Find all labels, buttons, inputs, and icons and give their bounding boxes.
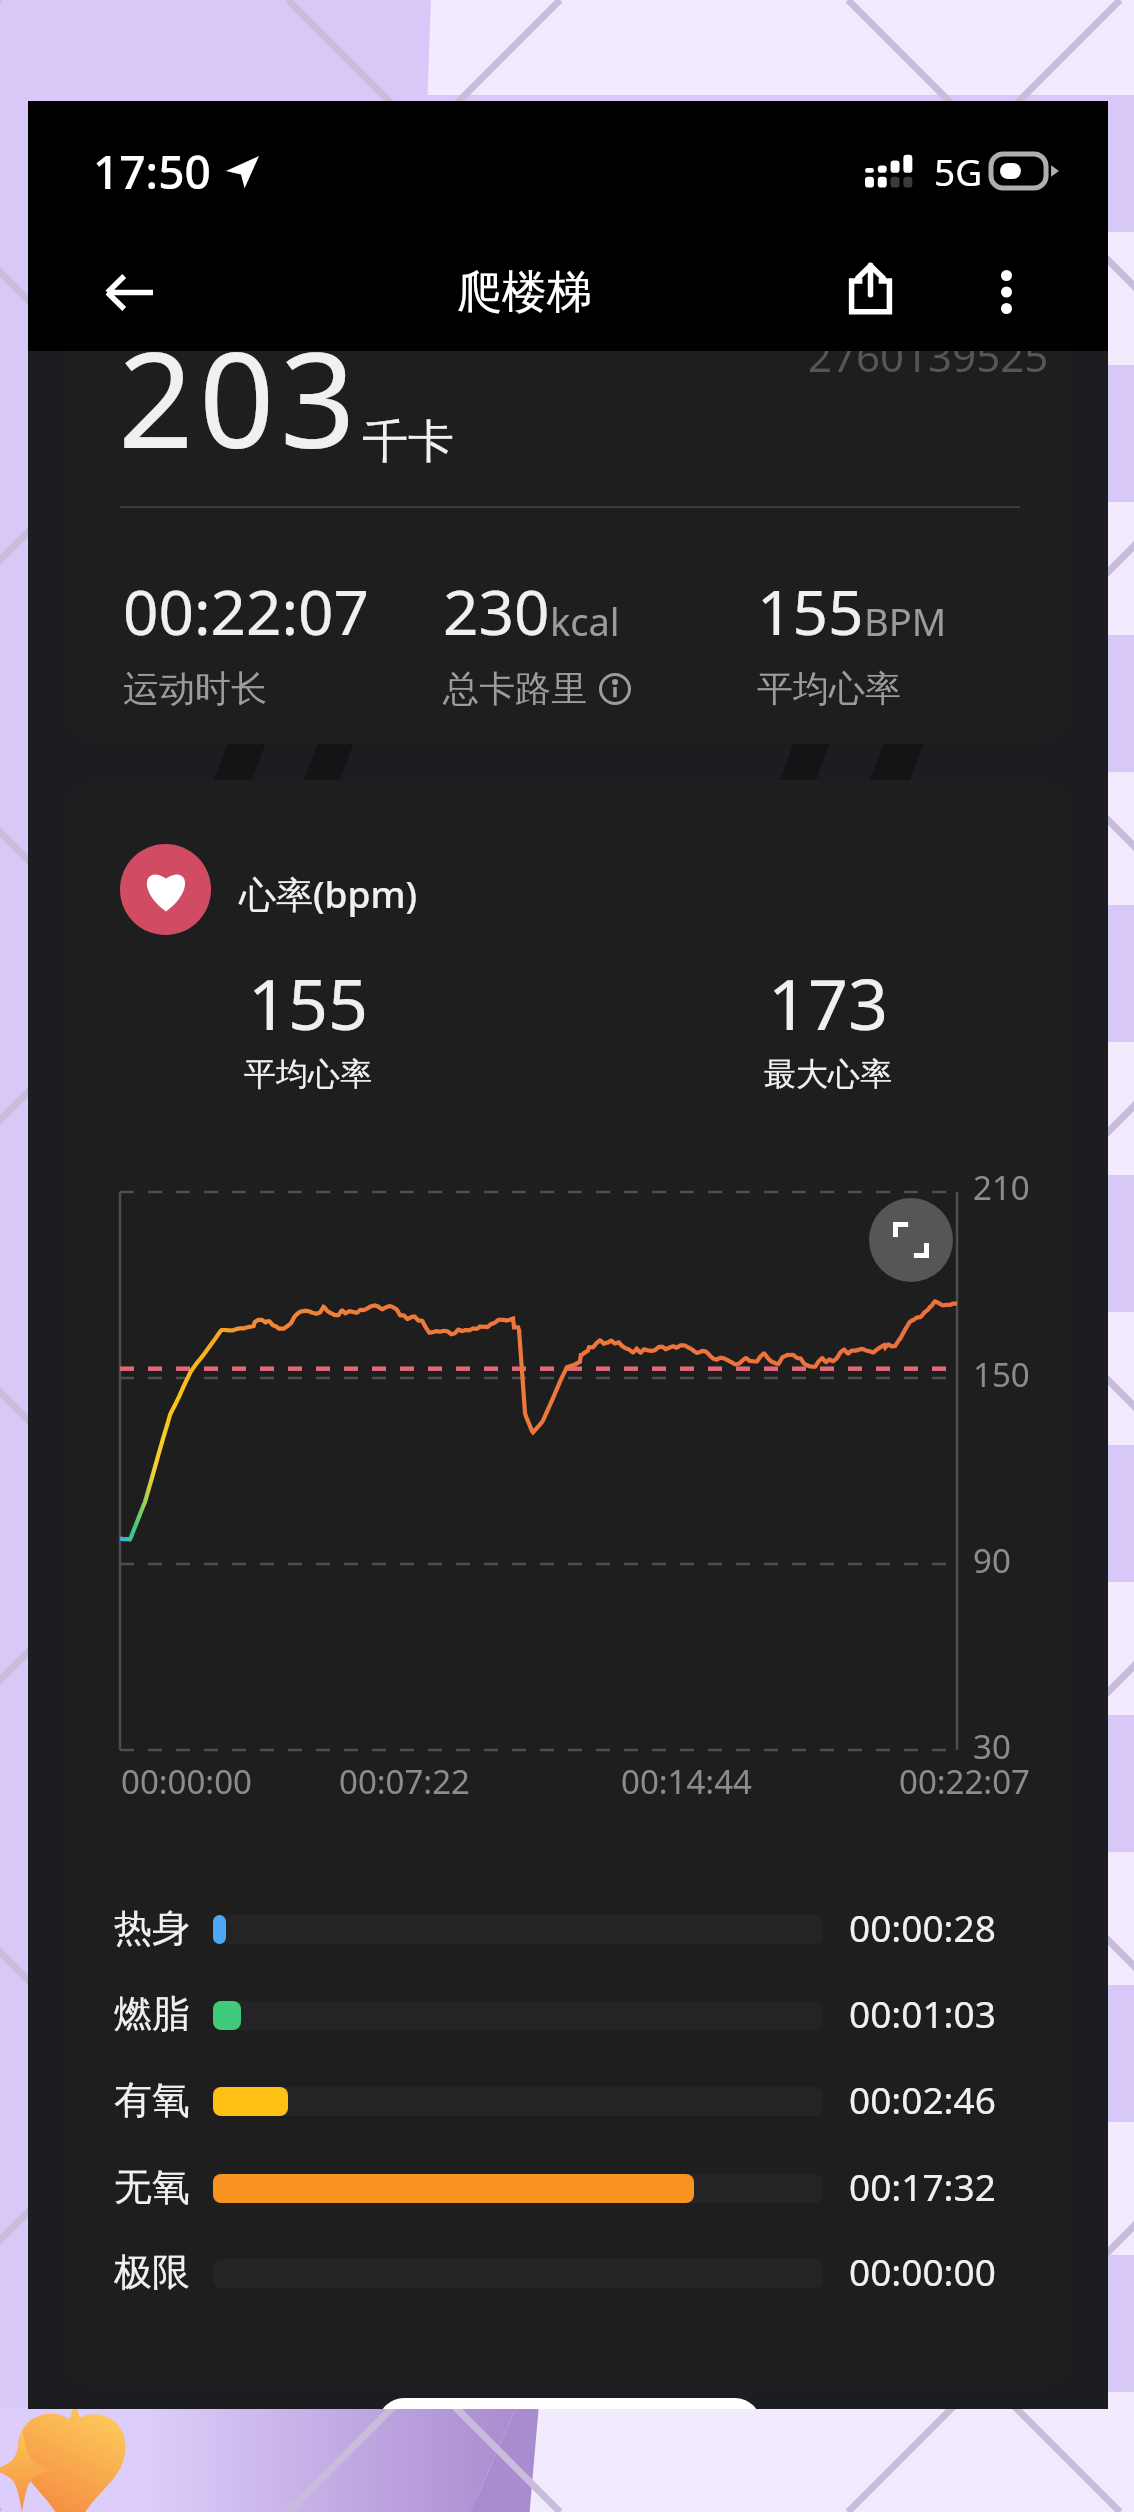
- staticText: 155: [248, 955, 369, 1050]
- staticText: 最大心率: [764, 1054, 892, 1094]
- staticText: 千卡: [362, 413, 454, 471]
- staticText: 30: [973, 1724, 1011, 1769]
- button[interactable]: 燃脂: [63, 1984, 1073, 2070]
- staticText: 00:00:28: [849, 1902, 996, 1952]
- staticText: 00:01:03: [849, 1988, 996, 2038]
- staticText: 203: [118, 307, 362, 487]
- staticText: 210: [973, 1165, 1030, 1210]
- button[interactable]: 热身: [63, 1898, 1073, 1984]
- staticText: 5G: [934, 146, 983, 196]
- staticText: 心率(bpm): [239, 868, 418, 919]
- button[interactable]: Share: [818, 238, 922, 338]
- staticText: 00:22:07: [123, 569, 370, 653]
- button[interactable]: 无氧: [63, 2157, 1073, 2243]
- staticText: 燃脂: [114, 1990, 190, 2038]
- staticText: 运动时长: [123, 666, 267, 711]
- staticText: 无氧: [114, 2163, 190, 2211]
- staticText: 00:22:07: [899, 1759, 1030, 1804]
- staticText: 00:00:00: [849, 2246, 996, 2296]
- staticText: 00:02:46: [849, 2074, 996, 2124]
- staticText: 00:00:00: [121, 1759, 252, 1804]
- button[interactable]: 有氧: [63, 2070, 1073, 2156]
- button[interactable]: 极限: [63, 2242, 1073, 2328]
- staticText: 总卡路里: [443, 666, 587, 711]
- staticText: 17:50: [93, 140, 211, 203]
- staticText: 150: [973, 1352, 1030, 1397]
- staticText: 00:14:44: [621, 1759, 752, 1804]
- staticText: BPM: [864, 595, 947, 647]
- staticText: 平均心率: [757, 666, 901, 711]
- staticText: kcal: [550, 595, 620, 647]
- staticText: 2760139525: [808, 327, 1049, 384]
- staticText: 230: [443, 569, 550, 653]
- staticText: 有氧: [114, 2076, 190, 2124]
- staticText: 00:07:22: [339, 1759, 470, 1804]
- staticText: 热身: [114, 1904, 190, 1952]
- staticText: 00:17:32: [849, 2161, 996, 2211]
- staticText: 155: [757, 569, 864, 653]
- staticText: 90: [973, 1538, 1011, 1583]
- staticText: 爬楼梯: [457, 264, 592, 321]
- button[interactable]: Expand chart: [869, 1198, 953, 1282]
- button[interactable]: Back: [75, 244, 183, 340]
- staticText: 极限: [114, 2248, 190, 2296]
- button[interactable]: More options: [956, 243, 1056, 341]
- staticText: 173: [768, 955, 889, 1050]
- staticText: 平均心率: [244, 1054, 372, 1094]
